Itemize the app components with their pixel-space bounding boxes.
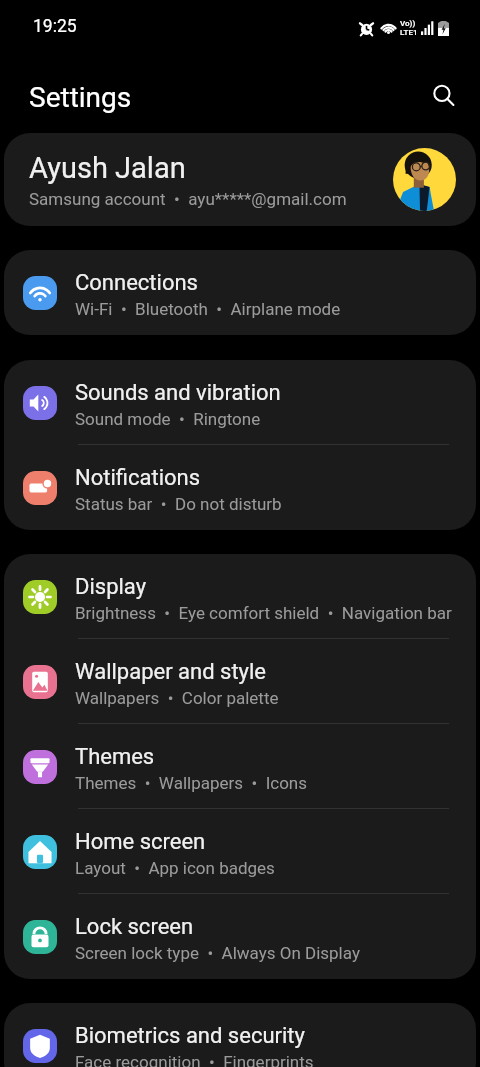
button[interactable]: Connections	[4, 250, 476, 335]
staticText: Layout • App icon badges	[75, 858, 275, 878]
staticText: Wi-Fi • Bluetooth • Airplane mode	[75, 299, 341, 319]
staticText: Notifications	[75, 465, 201, 491]
staticText: Screen lock type • Always On Display	[75, 943, 360, 963]
button[interactable]: Display	[4, 554, 476, 639]
staticText: Themes • Wallpapers • Icons	[75, 773, 308, 793]
staticText: Display	[75, 574, 147, 600]
staticText: Sounds and vibration	[75, 380, 281, 406]
staticText: Wallpapers • Color palette	[75, 688, 279, 708]
staticText: Face recognition • Fingerprints	[75, 1052, 314, 1067]
staticText: Connections	[75, 270, 198, 296]
staticText: Sound mode • Ringtone	[75, 409, 261, 429]
button[interactable]: Themes	[4, 724, 476, 809]
staticText: Settings	[29, 81, 132, 114]
button[interactable]: Wallpaper and style	[4, 639, 476, 724]
staticText: Wallpaper and style	[75, 659, 267, 685]
staticText: Home screen	[75, 829, 206, 855]
button[interactable]: Home screen	[4, 809, 476, 894]
staticText: LTE1	[400, 28, 418, 37]
button[interactable]: Notifications	[4, 445, 476, 530]
staticText: Ayush Jalan	[29, 151, 186, 185]
button[interactable]: Search	[422, 74, 466, 118]
staticText: Biometrics and security	[75, 1023, 305, 1049]
staticText: Status bar • Do not disturb	[75, 494, 282, 514]
staticText: Brightness • Eye comfort shield • Naviga…	[75, 603, 452, 623]
button[interactable]: Biometrics and security	[4, 1003, 476, 1067]
staticText: Themes	[75, 744, 155, 770]
button[interactable]: Sounds and vibration	[4, 360, 476, 445]
staticText: Lock screen	[75, 914, 194, 940]
button[interactable]: Lock screen	[4, 894, 476, 979]
staticText: Vo))	[400, 19, 416, 28]
button[interactable]: Ayush Jalan	[4, 133, 476, 226]
staticText: Samsung account • ayu*****@gmail.com	[29, 189, 347, 209]
staticText: 19:25	[33, 16, 77, 37]
